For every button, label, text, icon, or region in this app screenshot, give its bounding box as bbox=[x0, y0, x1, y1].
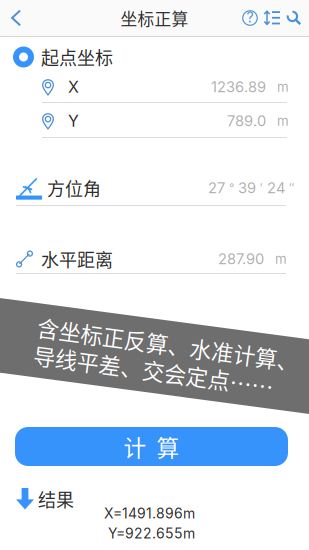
staticText: X=1491.896m bbox=[104, 505, 195, 522]
button[interactable]: 计 算 bbox=[15, 427, 288, 466]
staticText: 27 bbox=[208, 179, 225, 197]
staticText: 导线平差、交会定点…… bbox=[34, 354, 276, 386]
staticText: Y=922.655m bbox=[108, 525, 195, 542]
staticText: m bbox=[277, 113, 289, 129]
staticText: Y bbox=[68, 111, 79, 131]
staticText: 287.90 bbox=[218, 250, 264, 268]
staticText: 结果 bbox=[38, 486, 74, 512]
staticText: 1236.89 bbox=[211, 78, 266, 96]
button[interactable]: Decimal places bbox=[261, 4, 283, 32]
staticText: ° bbox=[229, 181, 234, 195]
staticText: 计 算 bbox=[123, 430, 179, 463]
staticText: 水平距离 bbox=[41, 246, 113, 272]
button[interactable]: 起点坐标 bbox=[16, 42, 296, 72]
button[interactable]: 方位角 bbox=[16, 175, 294, 201]
staticText: 789.0 bbox=[227, 112, 266, 130]
staticText: 24 bbox=[267, 179, 285, 197]
button[interactable]: Y bbox=[42, 109, 289, 133]
staticText: ′ bbox=[260, 181, 263, 195]
staticText: 39 bbox=[238, 179, 256, 197]
button[interactable]: X bbox=[42, 75, 289, 99]
button[interactable]: Settings bbox=[283, 4, 305, 32]
button[interactable]: Help bbox=[239, 4, 261, 32]
staticText: 起点坐标 bbox=[41, 44, 113, 70]
staticText: ″ bbox=[289, 181, 294, 195]
staticText: 含坐标正反算、水准计算、 bbox=[34, 326, 298, 358]
staticText: m bbox=[275, 251, 287, 267]
staticText: m bbox=[277, 79, 289, 95]
button[interactable]: Back bbox=[0, 0, 34, 36]
staticText: ? bbox=[246, 9, 253, 26]
staticText: 坐标正算 bbox=[120, 6, 188, 30]
button[interactable]: 水平距离 bbox=[16, 246, 287, 272]
staticText: X bbox=[68, 77, 79, 97]
staticText: 方位角 bbox=[47, 175, 101, 201]
